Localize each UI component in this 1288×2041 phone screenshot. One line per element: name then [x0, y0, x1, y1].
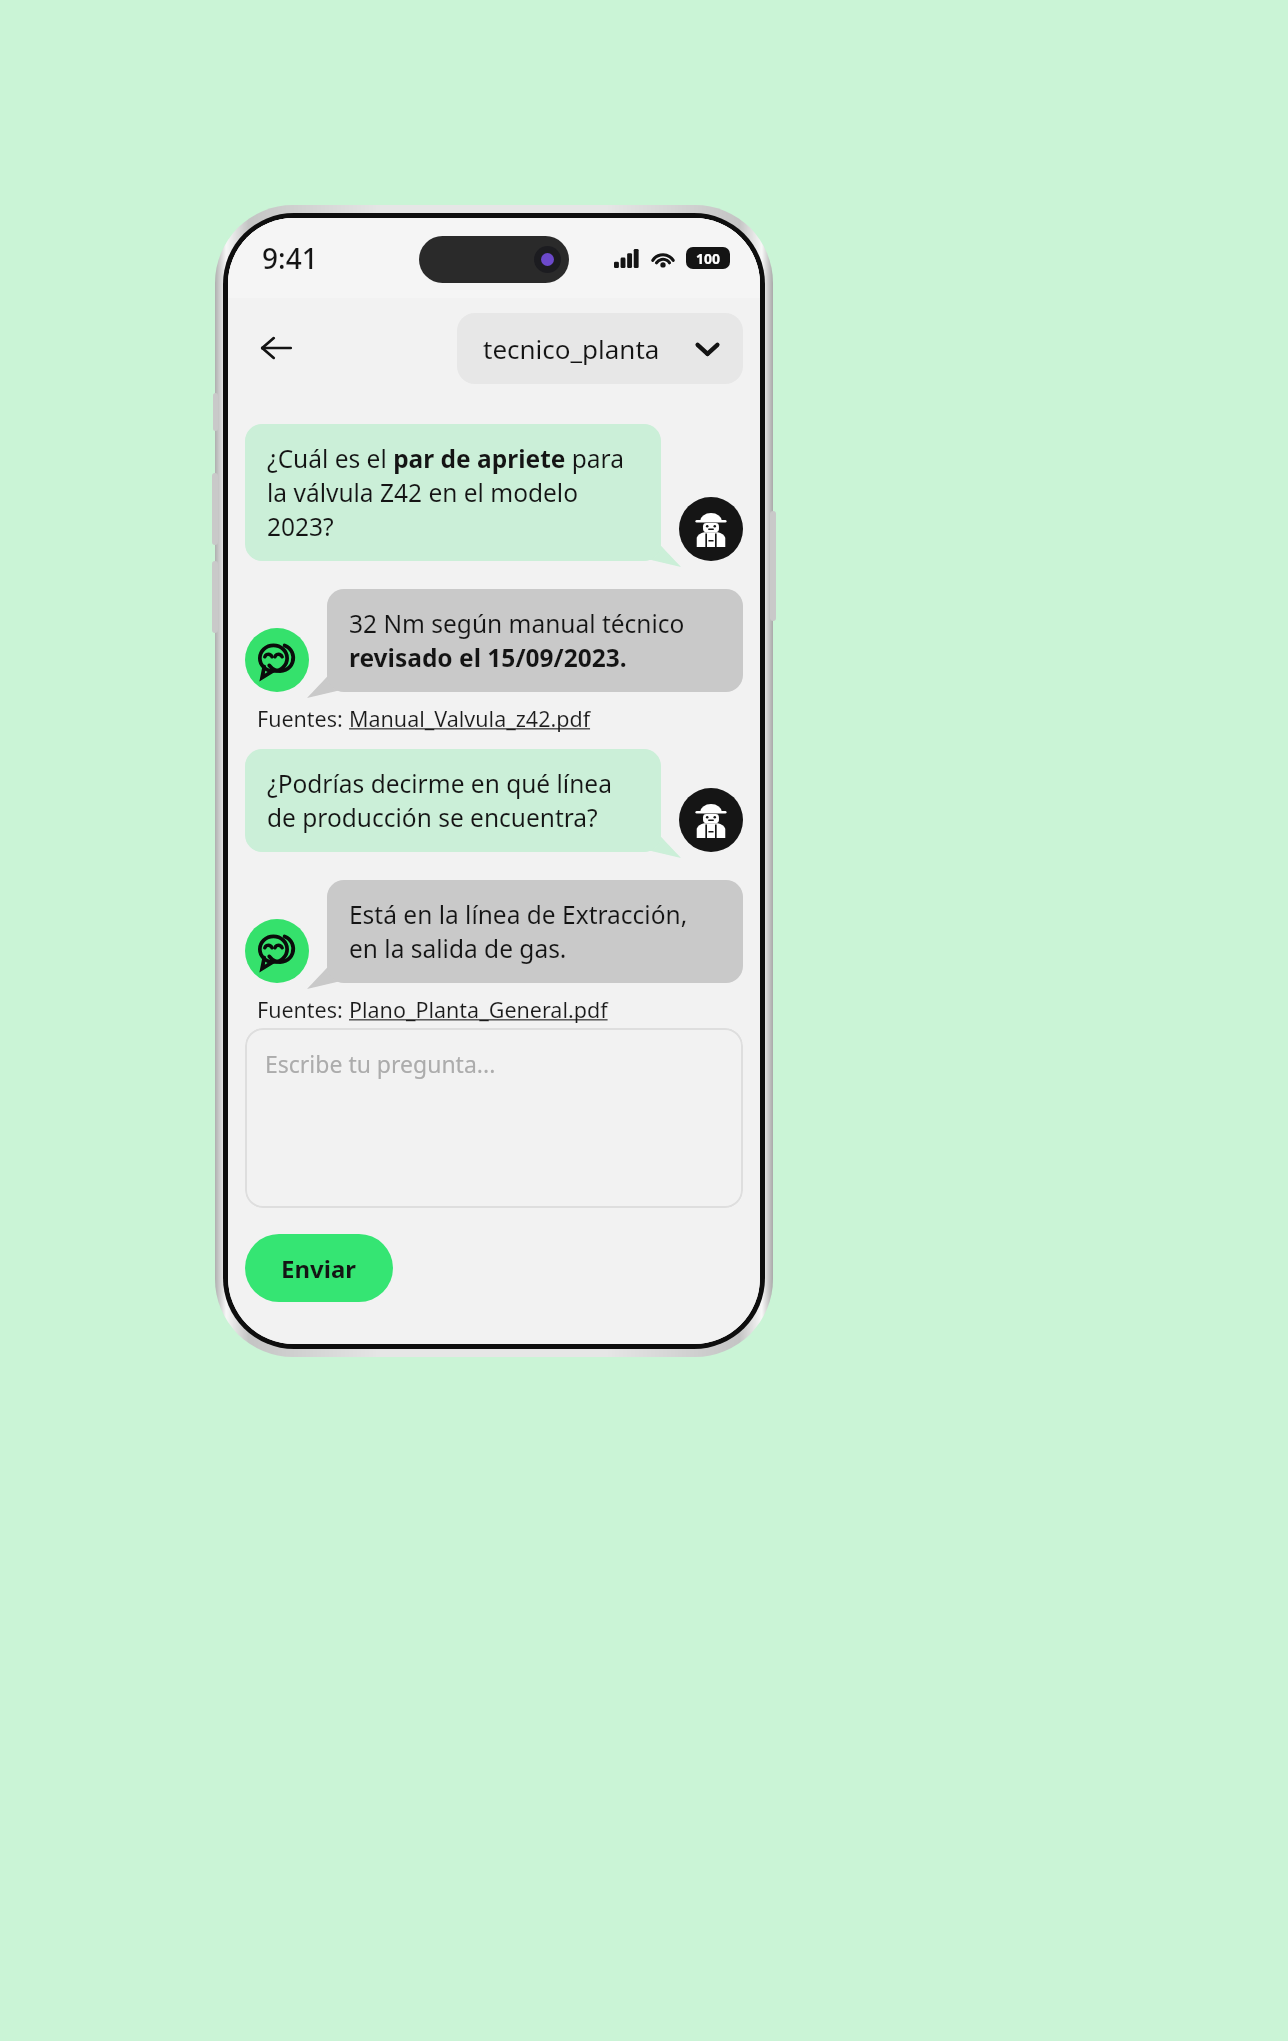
button[interactable]: Fuentes:: [257, 995, 608, 1024]
staticText: ¿Cuál es el par de apriete para la válvu…: [267, 442, 639, 543]
button[interactable]: Técnico: [679, 788, 743, 852]
button[interactable]: Técnico: [679, 497, 743, 561]
button[interactable]: Escribe tu pregunta...: [245, 1028, 743, 1208]
button[interactable]: Asistente: [245, 628, 309, 692]
button[interactable]: Back: [248, 320, 304, 376]
staticText: Está en la línea de Extracción, en la sa…: [349, 898, 721, 965]
staticText: Manual_Valvula_z42.pdf: [349, 704, 591, 733]
button[interactable]: Asistente: [245, 880, 743, 983]
staticText: tecnico_planta: [483, 331, 660, 366]
button[interactable]: ¿Podrías decirme en qué línea de producc…: [245, 749, 743, 852]
staticText: Fuentes:: [257, 995, 349, 1024]
button[interactable]: tecnico_planta: [457, 313, 743, 384]
button[interactable]: Asistente: [245, 919, 309, 983]
button[interactable]: Fuentes:: [257, 704, 591, 733]
button[interactable]: ¿Cuál es el par de apriete para la válvu…: [245, 424, 743, 561]
staticText: 100: [696, 249, 721, 268]
staticText: 9:41: [262, 239, 318, 277]
staticText: Plano_Planta_General.pdf: [349, 995, 608, 1024]
button[interactable]: Asistente: [245, 589, 743, 692]
staticText: Enviar: [281, 1252, 357, 1285]
staticText: 32 Nm según manual técnico revisado el 1…: [349, 607, 721, 674]
staticText: ¿Podrías decirme en qué línea de producc…: [267, 767, 639, 834]
staticText: Fuentes:: [257, 704, 349, 733]
staticText: Escribe tu pregunta...: [265, 1048, 496, 1079]
button[interactable]: Enviar: [245, 1234, 393, 1302]
